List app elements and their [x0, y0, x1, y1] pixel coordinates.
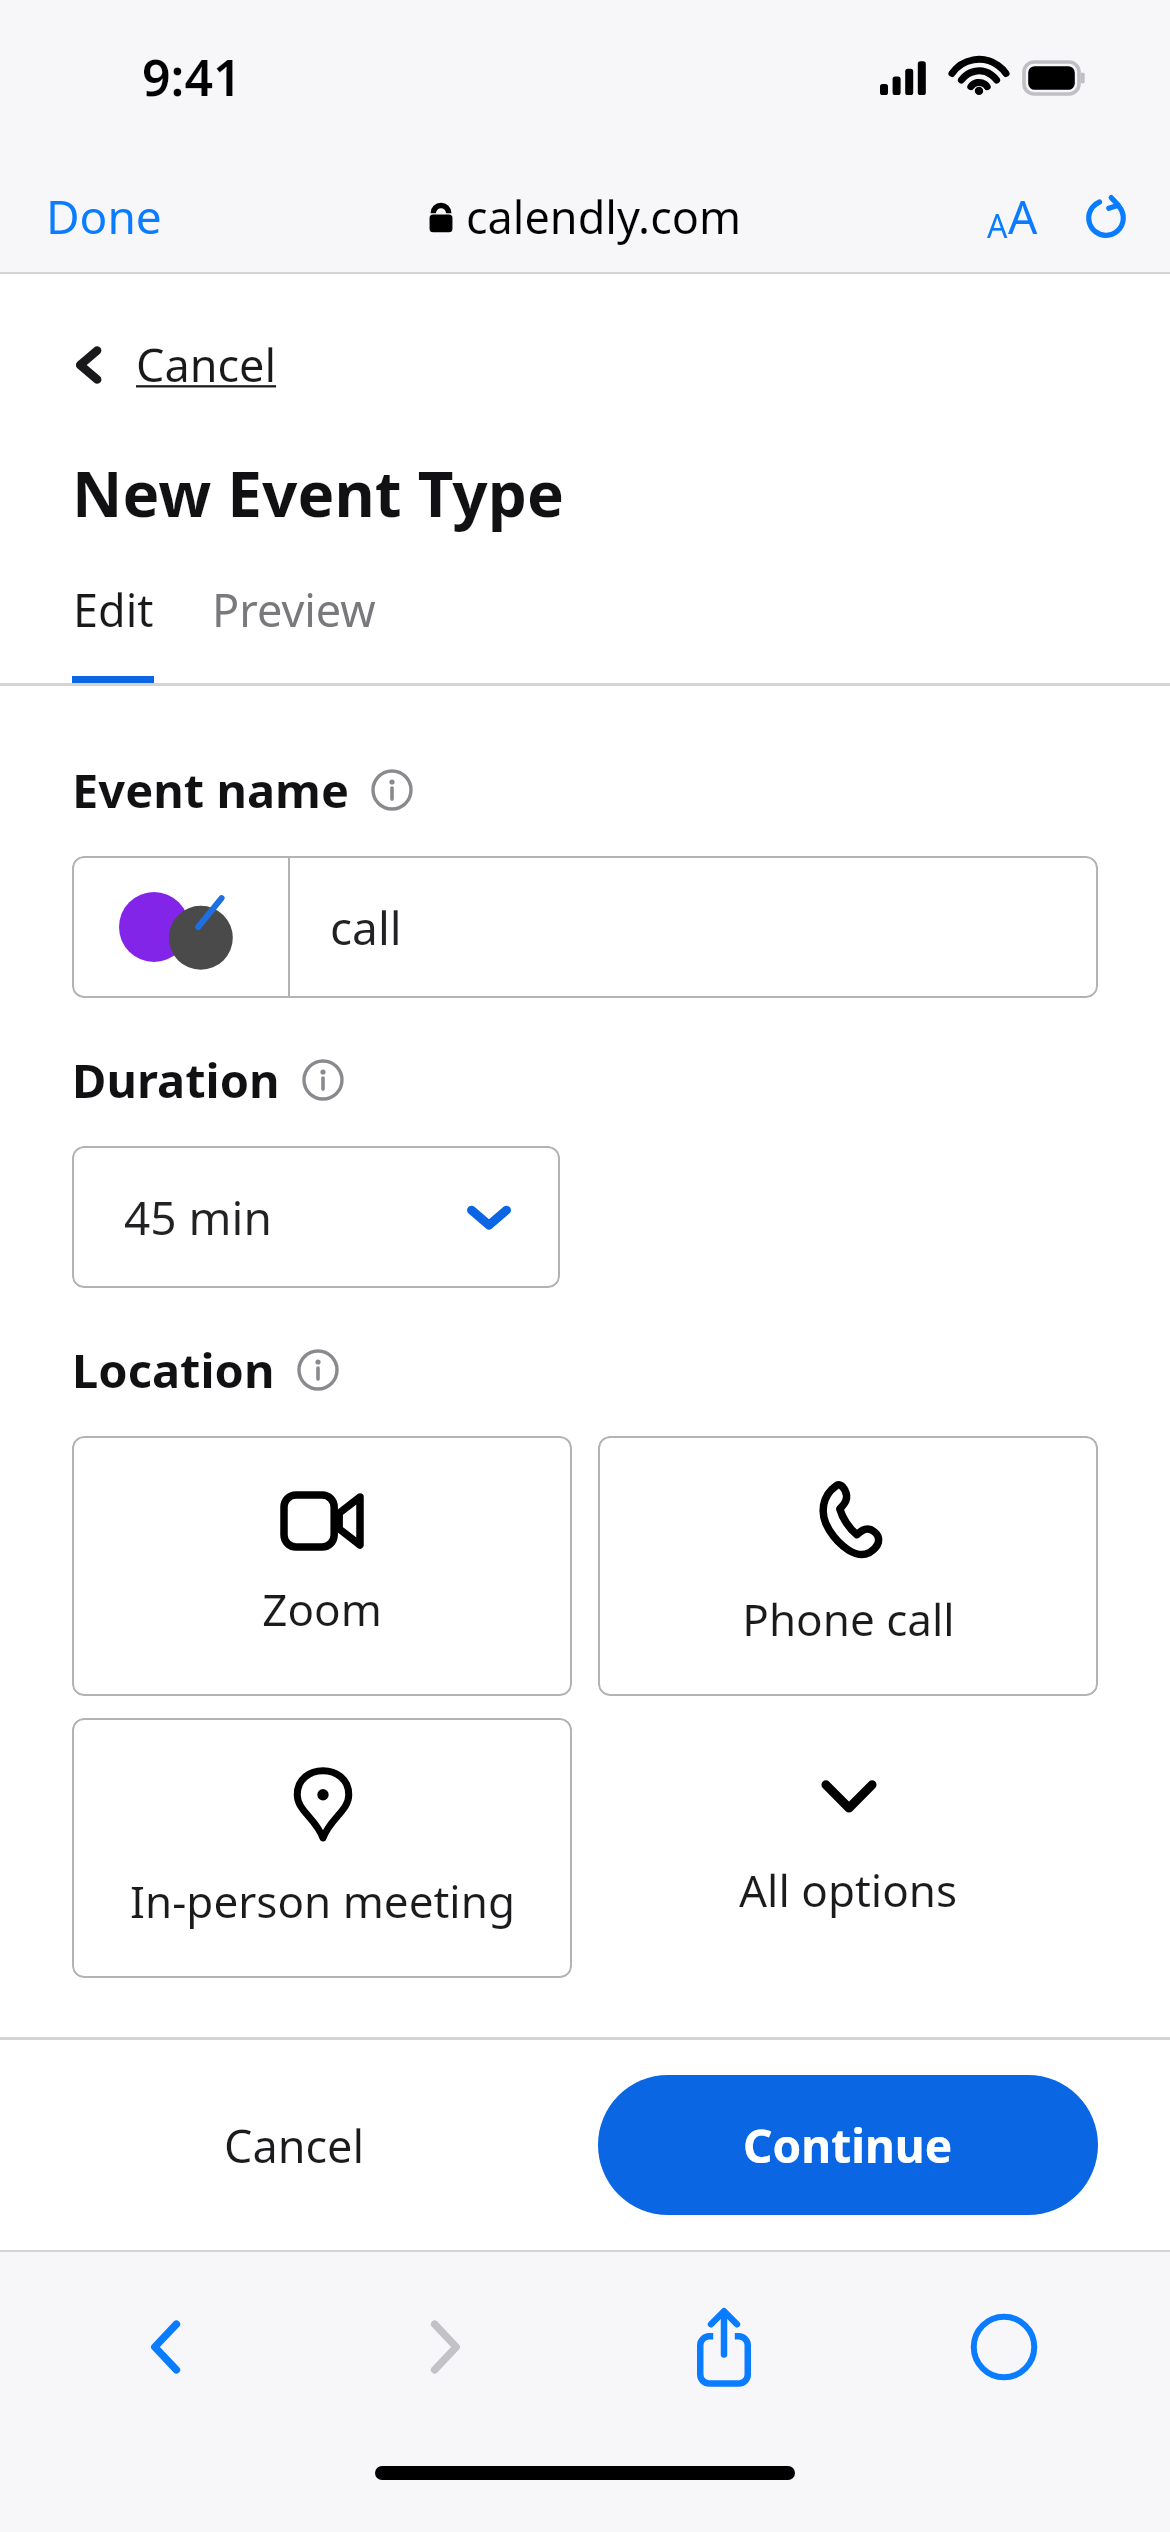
staticText: All options — [739, 1860, 958, 1920]
staticText: A — [1008, 185, 1038, 248]
button[interactable]: All options — [598, 1718, 1098, 1978]
staticText: Continue — [743, 2114, 953, 2177]
button[interactable]: Cancel — [200, 2097, 389, 2194]
button[interactable]: Edit — [72, 579, 154, 686]
staticText: Done — [46, 185, 162, 248]
staticText: Preview — [212, 579, 376, 640]
button[interactable]: Reload page — [1072, 183, 1140, 251]
staticText: Location — [72, 1338, 275, 1402]
staticText: call — [330, 896, 402, 959]
staticText: In-person meeting — [130, 1871, 515, 1931]
staticText: New Event Type — [72, 451, 564, 535]
staticText: A — [987, 204, 1008, 248]
button[interactable]: Done — [24, 173, 184, 260]
staticText: Cancel — [136, 334, 277, 395]
button[interactable]: Continue — [598, 2075, 1098, 2215]
button[interactable]: Bookmarks — [864, 2252, 1144, 2442]
staticText: Duration — [72, 1048, 280, 1112]
staticText: Edit — [73, 579, 154, 640]
staticText: Phone call — [742, 1589, 955, 1649]
staticText: Cancel — [224, 2115, 365, 2176]
button[interactable]: call — [72, 856, 1098, 998]
button[interactable]: Back — [26, 2252, 305, 2442]
button[interactable]: In-person meeting — [72, 1718, 572, 1978]
button[interactable]: Cancel — [58, 322, 291, 407]
staticText: 9:41 — [142, 43, 242, 111]
staticText: Event name — [72, 758, 349, 822]
button[interactable]: Forward — [305, 2252, 584, 2442]
button[interactable]: Phone call — [598, 1436, 1098, 1696]
button[interactable]: calendly.com — [412, 176, 758, 257]
button[interactable]: 45 min — [72, 1146, 560, 1288]
button[interactable]: Text size options — [973, 175, 1052, 258]
button[interactable]: Zoom — [72, 1436, 572, 1696]
staticText: 45 min — [124, 1186, 466, 1249]
button[interactable]: Share — [584, 2252, 864, 2442]
staticText: Zoom — [262, 1579, 382, 1639]
button[interactable]: Preview — [212, 579, 376, 686]
staticText: calendly.com — [466, 186, 742, 247]
